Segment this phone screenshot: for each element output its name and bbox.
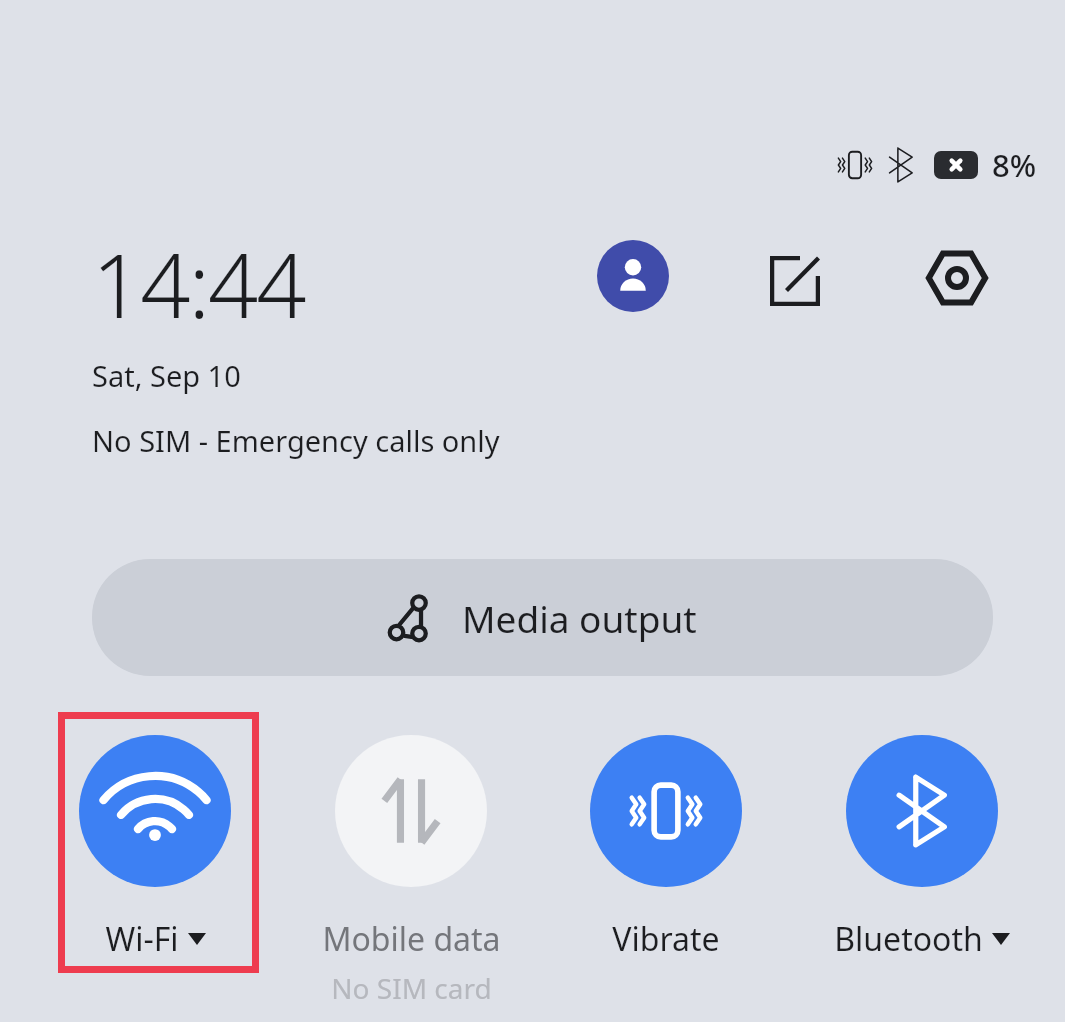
- button[interactable]: User profile: [597, 240, 669, 312]
- staticText: 14:44: [92, 224, 305, 344]
- staticText: Wi-Fi: [105, 917, 179, 961]
- staticText: Sat, Sep 10: [92, 356, 241, 395]
- button[interactable]: Settings: [917, 238, 997, 318]
- staticText: Media output: [462, 593, 697, 643]
- staticText: Mobile data: [322, 917, 501, 961]
- staticText: 8%: [992, 144, 1037, 186]
- staticText: No SIM - Emergency calls only: [92, 421, 500, 460]
- button[interactable]: Vibrate: [538, 735, 794, 961]
- staticText: No SIM card: [331, 969, 492, 1007]
- button[interactable]: Media output: [92, 559, 993, 676]
- staticText: Bluetooth: [834, 917, 983, 961]
- button[interactable]: Edit tiles: [757, 243, 833, 319]
- staticText: Vibrate: [612, 917, 720, 961]
- button[interactable]: Wi-Fi: [27, 735, 283, 961]
- button[interactable]: Bluetooth: [794, 735, 1050, 961]
- button[interactable]: Mobile data: [283, 735, 539, 1007]
